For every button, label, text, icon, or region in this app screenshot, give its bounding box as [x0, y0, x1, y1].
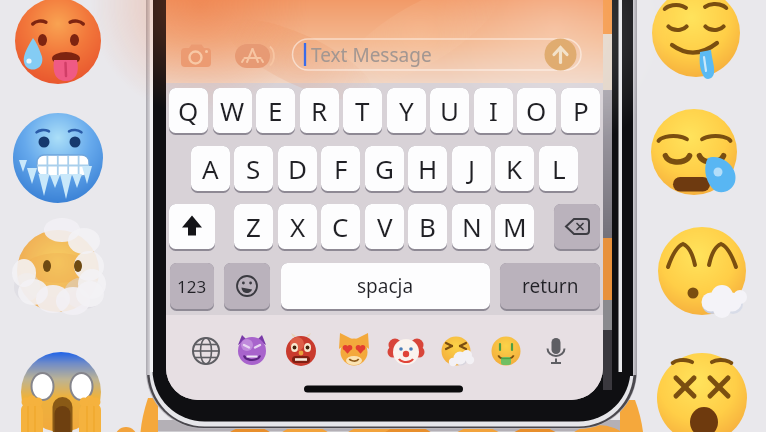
- staticText: T: [355, 93, 370, 128]
- staticText: D: [288, 151, 307, 186]
- staticText: S: [246, 151, 261, 186]
- button[interactable]: [540, 335, 572, 367]
- staticText: return: [522, 273, 579, 299]
- button[interactable]: J: [452, 146, 491, 193]
- staticText: H: [418, 151, 438, 186]
- staticText: F: [334, 151, 348, 186]
- button[interactable]: [224, 263, 270, 311]
- staticText: 123: [177, 275, 207, 298]
- button[interactable]: [236, 335, 268, 367]
- button[interactable]: L: [539, 146, 578, 193]
- button[interactable]: P: [561, 88, 600, 135]
- staticText: Q: [178, 93, 199, 128]
- staticText: Z: [246, 209, 261, 244]
- button[interactable]: O: [517, 88, 556, 135]
- button[interactable]: A: [191, 146, 230, 193]
- button[interactable]: Q: [169, 88, 208, 135]
- button[interactable]: W: [213, 88, 252, 135]
- staticText: E: [268, 93, 283, 128]
- button[interactable]: [169, 204, 215, 251]
- staticText: W: [220, 93, 245, 128]
- button[interactable]: K: [495, 146, 534, 193]
- button[interactable]: M: [495, 204, 534, 251]
- staticText: O: [526, 93, 547, 128]
- button[interactable]: S: [234, 146, 273, 193]
- staticText: M: [503, 209, 527, 244]
- button[interactable]: Z: [234, 204, 273, 251]
- staticText: Text Message: [311, 42, 432, 68]
- button[interactable]: [544, 38, 577, 71]
- button[interactable]: B: [408, 204, 447, 251]
- button[interactable]: return: [500, 263, 600, 311]
- staticText: U: [440, 93, 460, 128]
- button[interactable]: spacja: [281, 263, 490, 311]
- button[interactable]: U: [430, 88, 469, 135]
- button[interactable]: [440, 335, 472, 367]
- button[interactable]: T: [343, 88, 382, 135]
- button[interactable]: [190, 335, 222, 367]
- staticText: P: [573, 93, 589, 128]
- staticText: L: [552, 151, 566, 186]
- staticText: V: [377, 209, 393, 244]
- button[interactable]: [234, 43, 276, 68]
- button[interactable]: D: [278, 146, 317, 193]
- button[interactable]: X: [278, 204, 317, 251]
- button[interactable]: 123: [170, 263, 214, 311]
- staticText: K: [506, 151, 523, 186]
- button[interactable]: [554, 204, 600, 251]
- button[interactable]: [285, 335, 317, 367]
- button[interactable]: N: [452, 204, 491, 251]
- staticText: G: [375, 151, 394, 186]
- staticText: N: [462, 209, 482, 244]
- button[interactable]: V: [365, 204, 404, 251]
- staticText: spacja: [357, 273, 414, 299]
- button[interactable]: [180, 43, 212, 70]
- button[interactable]: C: [321, 204, 360, 251]
- button[interactable]: F: [321, 146, 360, 193]
- button[interactable]: H: [408, 146, 447, 193]
- staticText: Y: [399, 93, 414, 128]
- staticText: J: [468, 151, 476, 186]
- button[interactable]: [338, 335, 370, 367]
- staticText: A: [202, 151, 219, 186]
- button[interactable]: Text Message: [292, 39, 581, 70]
- staticText: R: [311, 93, 328, 128]
- staticText: I: [489, 93, 498, 128]
- staticText: B: [419, 209, 436, 244]
- button[interactable]: E: [256, 88, 295, 135]
- button[interactable]: Y: [387, 88, 426, 135]
- staticText: X: [290, 209, 306, 244]
- button[interactable]: G: [365, 146, 404, 193]
- button[interactable]: I: [474, 88, 513, 135]
- button[interactable]: R: [300, 88, 339, 135]
- button[interactable]: [490, 335, 522, 367]
- staticText: C: [332, 209, 349, 244]
- button[interactable]: [390, 335, 422, 367]
